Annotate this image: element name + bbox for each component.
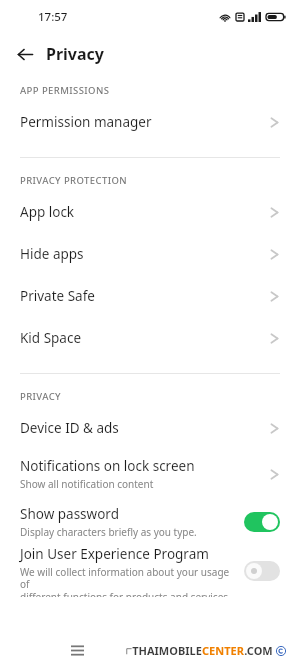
staticText: Display characters briefly as you type. (20, 525, 197, 539)
staticText: CENTER (202, 643, 244, 658)
button[interactable]: Hide apps (0, 233, 300, 275)
button[interactable]: Recents (62, 635, 92, 665)
button[interactable]: Notifications on lock screen (0, 449, 300, 499)
button[interactable]: Show password (0, 499, 300, 545)
button[interactable]: Permission manager (0, 101, 300, 143)
staticText: Hide apps (20, 245, 84, 263)
staticText: Show all notification content (20, 477, 154, 491)
button[interactable]: Kid Space (0, 317, 300, 359)
staticText: Kid Space (20, 329, 82, 347)
staticText: App lock (20, 203, 75, 221)
staticText: 17:57 (38, 9, 68, 25)
button[interactable]: On (244, 512, 280, 532)
staticText: APP PERMISSIONS (20, 84, 110, 97)
button[interactable]: Private Safe (0, 275, 300, 317)
button[interactable]: Device ID & ads (0, 407, 300, 449)
button[interactable]: App lock (0, 191, 300, 233)
staticText: Show password (20, 505, 119, 523)
staticText: Privacy (46, 43, 104, 65)
staticText: .COM (244, 643, 273, 658)
staticText: Join User Experience Program (20, 545, 209, 563)
staticText: Permission manager (20, 113, 152, 131)
staticText: PRIVACY (20, 390, 62, 403)
staticText: THAIMOBILE (132, 643, 202, 658)
staticText: Device ID & ads (20, 419, 119, 437)
staticText: We will collect information about your u… (20, 565, 236, 597)
staticText: PRIVACY PROTECTION (20, 174, 128, 187)
button[interactable]: Off (244, 561, 280, 581)
staticText: Private Safe (20, 287, 95, 305)
button[interactable]: Join User Experience Program (0, 545, 300, 597)
button[interactable]: Back (8, 37, 42, 71)
staticText: Notifications on lock screen (20, 457, 195, 475)
